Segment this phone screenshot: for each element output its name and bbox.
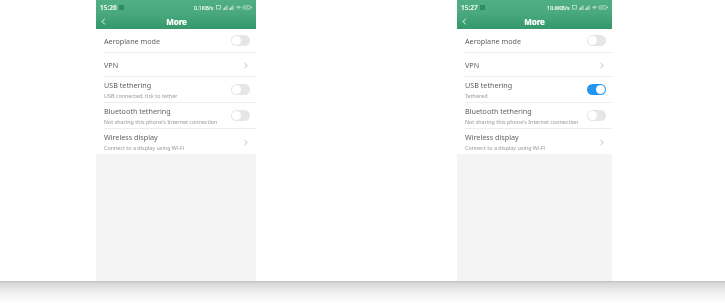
button[interactable]: Toggle off bbox=[231, 84, 250, 95]
staticText: VPN bbox=[104, 60, 119, 70]
button[interactable]: Toggle off bbox=[587, 110, 606, 121]
button[interactable]: Toggle off bbox=[587, 35, 606, 46]
button[interactable]: Toggle off bbox=[231, 35, 250, 46]
staticText: Aeroplane mode bbox=[104, 36, 161, 46]
staticText: Wireless display bbox=[465, 132, 519, 142]
staticText: Connect to a display using Wi-Fi bbox=[465, 144, 546, 151]
staticText: Wireless display bbox=[104, 132, 158, 142]
button[interactable]: Bluetooth tethering bbox=[96, 103, 256, 128]
button[interactable]: Wireless display bbox=[457, 129, 612, 154]
staticText: Bluetooth tethering bbox=[104, 106, 171, 116]
button[interactable]: VPN bbox=[96, 53, 256, 76]
button[interactable]: USB tethering bbox=[96, 77, 256, 102]
staticText: 15:26 bbox=[100, 3, 117, 12]
staticText: 15:27 bbox=[461, 3, 478, 12]
staticText: Bluetooth tethering bbox=[465, 106, 532, 116]
staticText: Tethered bbox=[465, 92, 488, 99]
staticText: USB tethering bbox=[465, 80, 513, 90]
button[interactable]: Aeroplane mode bbox=[96, 29, 256, 52]
staticText: Not sharing this phone's Internet connec… bbox=[104, 118, 218, 125]
staticText: VPN bbox=[465, 60, 480, 70]
button[interactable]: Bluetooth tethering bbox=[457, 103, 612, 128]
button[interactable]: Back bbox=[457, 14, 472, 29]
button[interactable]: Wireless display bbox=[96, 129, 256, 154]
staticText: More bbox=[166, 16, 187, 27]
staticText: Connect to a display using Wi-Fi bbox=[104, 144, 185, 151]
staticText: Aeroplane mode bbox=[465, 36, 522, 46]
button[interactable]: Aeroplane mode bbox=[457, 29, 612, 52]
button[interactable]: Toggle on bbox=[587, 84, 606, 95]
button[interactable]: VPN bbox=[457, 53, 612, 76]
staticText: USB connected, tick to tether bbox=[104, 92, 178, 99]
button[interactable]: USB tethering bbox=[457, 77, 612, 102]
staticText: 0.1KB/s bbox=[194, 4, 214, 11]
staticText: Not sharing this phone's Internet connec… bbox=[465, 118, 579, 125]
staticText: 10.8KB/s bbox=[547, 4, 570, 11]
button[interactable]: Back bbox=[96, 14, 111, 29]
button[interactable]: Toggle off bbox=[231, 110, 250, 121]
staticText: More bbox=[524, 16, 545, 27]
staticText: USB tethering bbox=[104, 80, 152, 90]
